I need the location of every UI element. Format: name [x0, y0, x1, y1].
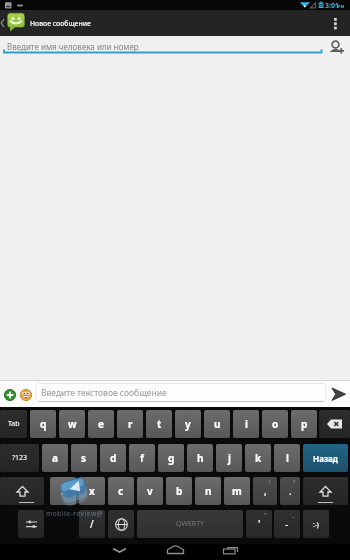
staticText: b: [176, 484, 183, 498]
staticText: w: [68, 417, 77, 431]
button[interactable]: -: [274, 510, 300, 538]
staticText: mobile-review@: [46, 509, 104, 518]
staticText: y: [185, 417, 191, 431]
staticText: QWERTY: [176, 519, 205, 529]
button[interactable]: u: [204, 410, 230, 438]
staticText: n: [205, 484, 212, 498]
button[interactable]: w: [59, 410, 85, 438]
staticText: t: [157, 417, 162, 431]
staticText: u: [214, 417, 221, 431]
staticText: s: [81, 451, 87, 465]
staticText: ?: [293, 478, 296, 485]
button[interactable]: c: [108, 477, 134, 505]
button[interactable]: ?123: [0, 444, 39, 472]
staticText: z: [61, 484, 66, 498]
button[interactable]: /: [79, 510, 105, 538]
staticText: ': [258, 517, 261, 531]
button[interactable]: l: [274, 444, 300, 472]
button[interactable]: QWERTY: [137, 510, 243, 538]
button[interactable]: j: [216, 444, 242, 472]
button[interactable]: x: [79, 477, 105, 505]
staticText: h: [197, 451, 204, 465]
staticText: :-): [313, 520, 319, 529]
staticText: -: [285, 517, 289, 531]
button[interactable]: s: [71, 444, 97, 472]
staticText: x: [89, 484, 95, 498]
button[interactable]: [328, 384, 350, 405]
button[interactable]: d: [100, 444, 126, 472]
staticText: Tab: [8, 419, 20, 429]
button[interactable]: o: [262, 410, 288, 438]
button[interactable]: [221, 544, 241, 558]
staticText: g: [168, 451, 175, 465]
button[interactable]: Назад: [303, 444, 348, 472]
button[interactable]: q: [30, 410, 56, 438]
staticText: Введите текстовое сообщение: [41, 387, 167, 399]
button[interactable]: [4, 389, 16, 401]
button[interactable]: b: [166, 477, 192, 505]
button[interactable]: [166, 544, 185, 558]
button[interactable]: f: [129, 444, 155, 472]
staticText: Новое сообщение: [30, 19, 91, 28]
button[interactable]: h: [187, 444, 213, 472]
staticText: e: [98, 417, 104, 431]
staticText: ,: [264, 484, 267, 498]
button[interactable]: p: [291, 410, 317, 438]
button[interactable]: r: [117, 410, 143, 438]
staticText: d: [110, 451, 117, 465]
button[interactable]: [109, 544, 130, 558]
button[interactable]: ,: [253, 477, 277, 505]
staticText: o: [272, 417, 279, 431]
button[interactable]: i: [233, 410, 259, 438]
staticText: k: [255, 451, 262, 465]
staticText: j: [228, 451, 231, 465]
button[interactable]: [303, 477, 348, 505]
button[interactable]: [6, 12, 26, 32]
staticText: m: [232, 484, 242, 498]
staticText: /: [90, 517, 94, 531]
button[interactable]: [329, 40, 345, 55]
button[interactable]: t: [146, 410, 172, 438]
button[interactable]: e: [88, 410, 114, 438]
staticText: PM: [338, 4, 345, 9]
staticText: a: [52, 451, 58, 465]
button[interactable]: [108, 510, 134, 538]
staticText: q: [40, 417, 47, 431]
button[interactable]: ': [246, 510, 272, 538]
button[interactable]: :-): [303, 510, 329, 538]
staticText: ?123: [12, 453, 28, 463]
staticText: c: [118, 484, 124, 498]
button[interactable]: n: [195, 477, 221, 505]
button[interactable]: v: [137, 477, 163, 505]
staticText: p: [301, 417, 308, 431]
button[interactable]: [0, 477, 44, 505]
button[interactable]: [319, 410, 350, 438]
button[interactable]: g: [158, 444, 184, 472]
staticText: r: [128, 417, 133, 431]
button[interactable]: y: [175, 410, 201, 438]
button[interactable]: k: [245, 444, 271, 472]
button[interactable]: [20, 389, 32, 401]
button[interactable]: m: [224, 477, 250, 505]
staticText: Введите имя человека или номер: [7, 41, 139, 52]
staticText: _: [292, 511, 295, 518]
staticText: Назад: [313, 453, 338, 464]
button[interactable]: Tab: [0, 410, 27, 438]
button[interactable]: z: [50, 477, 76, 505]
staticText: 3:01: [325, 1, 339, 11]
staticText: .: [289, 484, 292, 498]
staticText: l: [286, 451, 289, 465]
staticText: v: [147, 484, 153, 498]
staticText: i: [245, 417, 248, 431]
button[interactable]: a: [42, 444, 68, 472]
staticText: ": [264, 511, 267, 518]
staticText: f: [140, 451, 144, 465]
button[interactable]: [18, 510, 44, 538]
staticText: !: [269, 478, 271, 485]
button[interactable]: [326, 10, 350, 36]
button[interactable]: .: [280, 477, 300, 505]
